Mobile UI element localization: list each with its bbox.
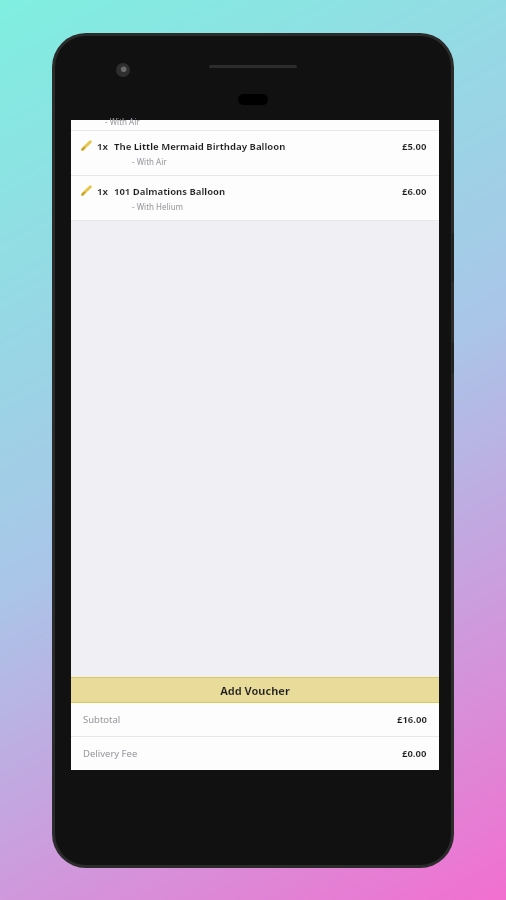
staticText: Add Voucher [220,683,290,698]
button[interactable]: Delivery Fee [83,737,427,770]
staticText: £6.00 [402,185,427,198]
staticText: 1x [97,185,108,198]
button[interactable]: Subtotal [83,703,427,736]
button[interactable]: Edit item [71,131,439,175]
staticText: £16.00 [397,713,427,726]
button[interactable]: Add Voucher [71,678,439,702]
button[interactable]: Edit item [71,176,439,220]
staticText: The Little Mermaid Birthday Balloon [114,140,286,153]
staticText: 101 Dalmations Balloon [114,185,226,198]
staticText: - With Air [132,156,167,167]
other: Edit item [81,185,92,196]
staticText: £5.00 [402,140,427,153]
staticText: £0.00 [402,747,427,760]
other: Edit item [81,140,92,151]
staticText: 1x [97,140,108,153]
staticText: Delivery Fee [83,747,402,760]
staticText: - With Air [105,116,140,126]
staticText: Subtotal [83,713,397,726]
staticText: - With Helium [132,201,184,212]
